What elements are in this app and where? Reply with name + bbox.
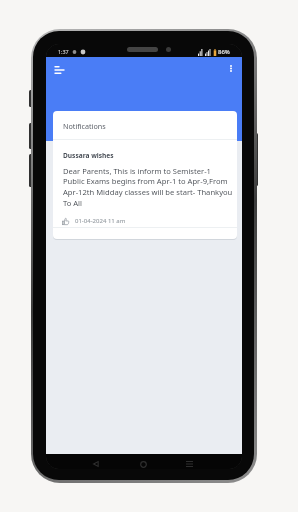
staticText: Notifications: [63, 121, 106, 131]
button[interactable]: Notifications: [53, 111, 237, 239]
staticText: 1:37: [58, 48, 69, 55]
staticText: Dear Parents, This is inform to Semister…: [63, 166, 233, 209]
button[interactable]: More options: [221, 58, 241, 78]
staticText: 01-04-2024 11 am: [75, 217, 126, 225]
staticText: 86%: [218, 48, 230, 56]
button[interactable]: Recent apps: [182, 457, 196, 469]
staticText: Dussara wishes: [63, 151, 114, 160]
button[interactable]: Home: [136, 457, 150, 469]
button[interactable]: Open navigation menu: [49, 60, 69, 80]
button[interactable]: Back: [89, 457, 103, 469]
